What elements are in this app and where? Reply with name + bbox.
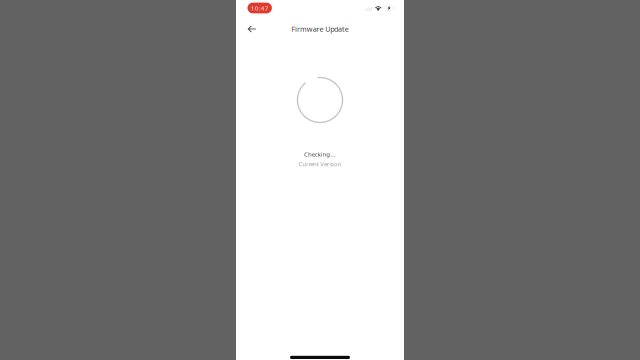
staticText: Checking... (304, 150, 336, 158)
button[interactable]: Back (242, 19, 262, 39)
staticText: Firmware Update (291, 24, 349, 34)
staticText: Current Version (298, 160, 342, 168)
staticText: 10:47 (251, 4, 269, 12)
